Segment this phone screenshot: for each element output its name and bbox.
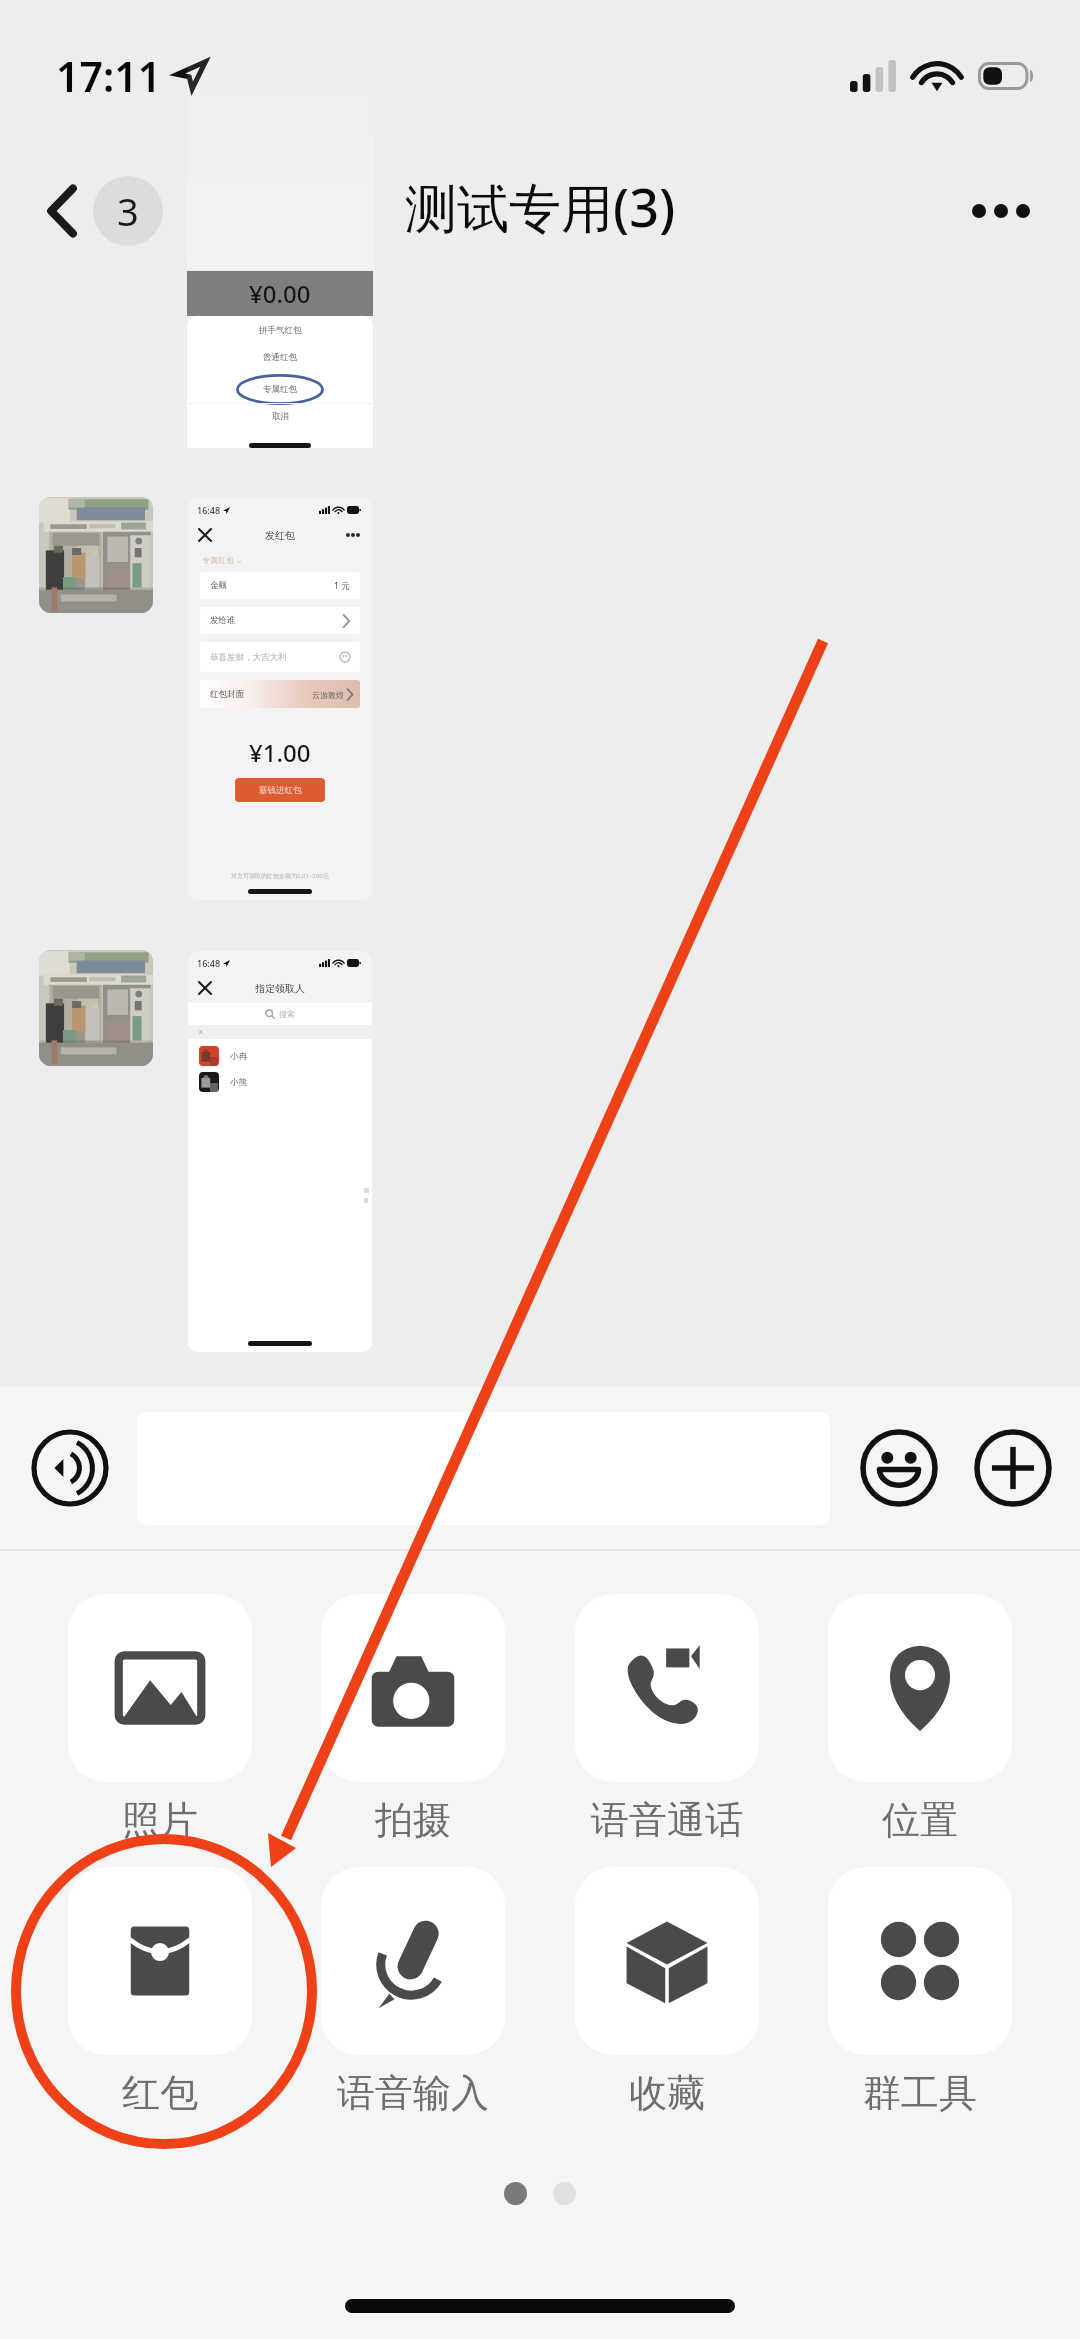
button[interactable] bbox=[137, 1412, 830, 1525]
staticText: 位置 bbox=[882, 1796, 958, 1844]
button[interactable]: Voice message bbox=[30, 1428, 110, 1508]
staticText: 金额 bbox=[210, 580, 227, 591]
staticText: 对方可领取的红包金额为0.01~200元 bbox=[231, 872, 329, 880]
staticText: 小冉 bbox=[230, 1051, 247, 1062]
staticText: 红包 bbox=[122, 2069, 198, 2117]
staticText: 恭喜发财，大吉大利 bbox=[210, 652, 287, 663]
staticText: 普通红包 bbox=[263, 352, 297, 363]
staticText: 群工具 bbox=[863, 2069, 977, 2117]
button[interactable]: 收藏 bbox=[575, 1867, 759, 2117]
button[interactable]: More functions bbox=[973, 1428, 1053, 1508]
staticText: 测试专用(3) bbox=[405, 171, 676, 242]
button[interactable]: 照片 bbox=[68, 1594, 252, 1844]
staticText: 专属红包 ⌄ bbox=[202, 554, 243, 565]
staticText: 塞钱进红包 bbox=[259, 785, 302, 796]
staticText: 取消 bbox=[272, 411, 289, 422]
staticText: ¥1.00 bbox=[249, 736, 311, 769]
staticText: 指定领取人 bbox=[255, 982, 305, 995]
button[interactable]: 语音输入 bbox=[321, 1867, 505, 2117]
staticText: 照片 bbox=[122, 1796, 198, 1844]
staticText: 收藏 bbox=[629, 2069, 705, 2117]
button[interactable]: 红包 bbox=[68, 1867, 252, 2117]
staticText: 拍摄 bbox=[375, 1796, 451, 1844]
staticText: 语音输入 bbox=[337, 2069, 489, 2117]
staticText: 16:48 bbox=[197, 504, 221, 516]
button[interactable]: 语音通话 bbox=[575, 1594, 759, 1844]
staticText: ¥0.00 bbox=[249, 277, 311, 310]
staticText: 1 元 bbox=[334, 580, 350, 592]
button[interactable]: More options bbox=[958, 190, 1044, 232]
button[interactable]: 位置 bbox=[828, 1594, 1012, 1844]
staticText: 17:11 bbox=[56, 48, 162, 104]
staticText: 发红包 bbox=[265, 529, 295, 542]
staticText: 云游敦煌 bbox=[312, 690, 344, 700]
staticText: 发给谁 bbox=[210, 615, 236, 626]
staticText: 红包封面 bbox=[210, 689, 244, 700]
button[interactable]: 拍摄 bbox=[321, 1594, 505, 1844]
staticText: 专属红包 bbox=[263, 384, 297, 395]
staticText: 16:48 bbox=[197, 957, 221, 969]
button[interactable]: Emoji bbox=[859, 1428, 939, 1508]
staticText: 3 bbox=[117, 185, 139, 237]
staticText: 拼手气红包 bbox=[259, 325, 302, 336]
staticText: 小熊 bbox=[230, 1077, 247, 1088]
staticText: 语音通话 bbox=[591, 1796, 743, 1844]
button[interactable]: Back, 3 unread bbox=[37, 166, 175, 256]
staticText: 搜索 bbox=[279, 1009, 295, 1019]
staticText: X bbox=[199, 1028, 203, 1036]
button[interactable]: 群工具 bbox=[828, 1867, 1012, 2117]
